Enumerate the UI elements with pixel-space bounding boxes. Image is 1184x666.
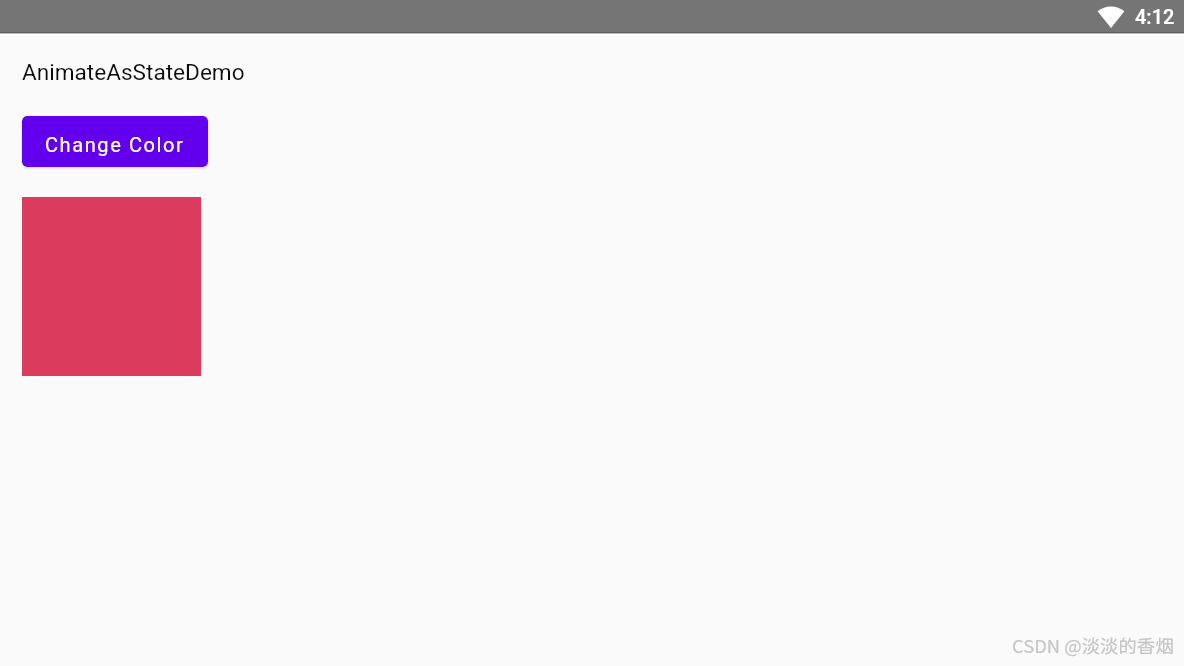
button[interactable]: Change Color xyxy=(22,116,208,167)
other: Wi-Fi signal xyxy=(1097,6,1125,28)
staticText: CSDN @淡淡的香烟 xyxy=(1012,632,1174,659)
staticText: AnimateAsStateDemo xyxy=(22,59,245,85)
staticText: Change Color xyxy=(45,133,185,156)
staticText: 4:12 xyxy=(1135,5,1175,28)
